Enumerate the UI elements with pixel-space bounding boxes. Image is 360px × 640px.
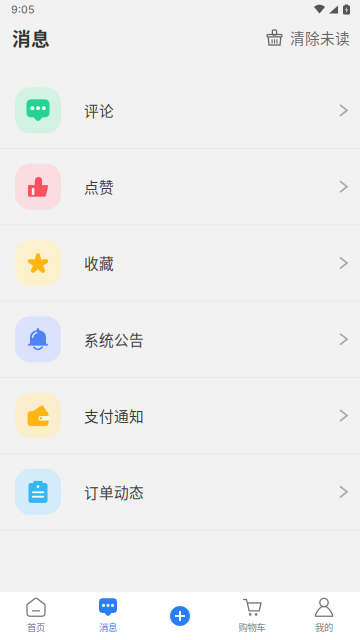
staticText: 购物车 [238,620,265,634]
staticText: 9:05 [11,3,34,16]
staticText: 消息 [12,24,50,51]
staticText: 消息 [99,620,117,634]
staticText: 首页 [27,620,45,634]
button[interactable]: 发布 [144,592,216,640]
staticText: 评论 [84,100,114,121]
button[interactable]: 系统公告 [0,302,360,378]
button[interactable]: 支付通知 [0,378,360,454]
button[interactable]: 首页 [0,592,72,640]
button[interactable]: 我的 [288,592,360,640]
button[interactable]: 消息 [72,592,144,640]
staticText: 系统公告 [84,329,144,350]
button[interactable]: 订单动态 [0,454,360,530]
staticText: 清除未读 [290,27,350,48]
button[interactable]: 收藏 [0,225,360,302]
staticText: 支付通知 [84,405,144,426]
staticText: 我的 [315,620,333,634]
staticText: 订单动态 [84,481,144,502]
staticText: 收藏 [84,252,114,273]
button[interactable]: 评论 [0,73,360,149]
staticText: 点赞 [84,176,114,197]
button[interactable]: 清除未读 [267,19,350,56]
button[interactable]: 购物车 [216,592,288,640]
button[interactable]: 点赞 [0,149,360,225]
